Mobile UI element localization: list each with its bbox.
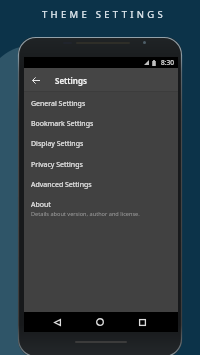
button[interactable]: Display Settings [24,134,178,154]
button[interactable]: Bookmark Settings [24,114,178,134]
staticText: Details about version, author and licens… [31,210,140,218]
button[interactable]: Privacy Settings [24,155,178,175]
staticText: Bookmark Settings [31,119,94,129]
button[interactable]: About [24,200,178,222]
staticText: Privacy Settings [31,160,83,170]
staticText: Settings [55,75,87,86]
button[interactable]: Advanced Settings [24,175,178,195]
staticText: Advanced Settings [31,180,92,190]
button[interactable]: Home [91,313,109,331]
button[interactable]: Recent apps [133,313,151,331]
staticText: General Settings [31,99,86,109]
staticText: 8:30 [161,58,174,67]
button[interactable]: Navigate up [28,72,44,88]
button[interactable]: Back [48,313,66,331]
staticText: THEME SETTINGS [42,8,166,21]
staticText: Display Settings [31,139,84,149]
staticText: About [31,200,51,210]
button[interactable]: General Settings [24,94,178,114]
